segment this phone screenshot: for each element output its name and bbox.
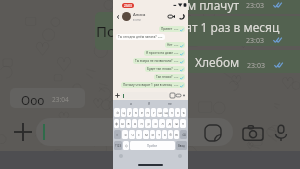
staticText: 23:0	[158, 36, 163, 39]
staticText: ь	[164, 132, 166, 137]
staticText: Ты вчера не позвонила?	[135, 59, 173, 63]
staticText: Ввод	[178, 144, 185, 148]
button[interactable]: ь	[162, 130, 167, 139]
button[interactable]: Camera	[176, 93, 181, 98]
staticText: л	[161, 121, 164, 126]
staticText: Пробел	[147, 144, 158, 148]
button[interactable]: Ты вчера не позвонила?	[135, 59, 183, 63]
button[interactable]: ш	[157, 108, 162, 117]
staticText: 23:0	[174, 44, 179, 47]
button[interactable]: ?123	[114, 141, 122, 150]
staticText: 23:03	[247, 61, 265, 71]
button[interactable]: т	[156, 130, 161, 139]
button[interactable]: ⇧	[114, 130, 121, 139]
button[interactable]: р	[145, 119, 151, 128]
button[interactable]: е	[139, 108, 144, 117]
staticText: 23:0	[174, 60, 179, 63]
button[interactable]: Потому что варят 1 раз в месяц	[123, 83, 183, 87]
button[interactable]: Ввод	[176, 141, 187, 150]
button[interactable]: й	[114, 108, 120, 117]
button[interactable]: м	[143, 130, 149, 139]
staticText: ы	[121, 121, 124, 126]
button[interactable]: н	[145, 108, 150, 117]
button[interactable]: Voice message	[271, 123, 290, 142]
staticText: По	[96, 21, 116, 41]
staticText: не	[168, 102, 172, 106]
staticText: 23:0	[174, 28, 179, 31]
staticText: Потому что варят 1 раз в месяц	[123, 83, 173, 87]
button[interactable]: Message	[121, 92, 169, 99]
staticText: э	[182, 121, 184, 126]
button[interactable]: ц	[121, 108, 126, 117]
staticText: Будет так плохо?	[147, 67, 173, 71]
button[interactable]: к	[133, 108, 138, 117]
staticText: я	[130, 102, 132, 106]
staticText: т	[158, 132, 160, 137]
staticText: ю	[175, 132, 178, 137]
button[interactable]: Camera	[242, 123, 264, 145]
staticText: Привет	[161, 27, 173, 31]
button[interactable]: у	[127, 108, 132, 117]
staticText: 23:03	[246, 1, 264, 11]
button[interactable]: Back	[115, 14, 121, 20]
button[interactable]: ☺	[123, 141, 129, 150]
staticText: е	[141, 110, 143, 115]
button[interactable]: ъ	[181, 108, 186, 117]
button[interactable]: л	[159, 119, 165, 128]
button[interactable]: Ты сегодня днём занята?	[118, 35, 163, 39]
button[interactable]: Привет	[161, 27, 183, 31]
button[interactable]: Нет	[167, 43, 183, 47]
staticText: г	[153, 110, 155, 115]
button[interactable]: ф	[114, 119, 119, 128]
staticText: з	[171, 110, 173, 115]
button[interactable]: щ	[163, 108, 168, 117]
staticText: м плачут	[187, 0, 240, 13]
button[interactable]: х	[175, 108, 180, 117]
button[interactable]: Video call	[168, 13, 175, 20]
button[interactable]: а	[132, 119, 137, 128]
staticText: 23:0	[174, 76, 179, 79]
button[interactable]: Sticker	[203, 123, 223, 143]
staticText: Ты сегодня днём занята?	[118, 35, 157, 39]
staticText: Так плохо?	[156, 75, 173, 79]
button[interactable]: и	[150, 130, 155, 139]
staticText: Нет	[167, 43, 173, 47]
staticText: ж	[175, 121, 178, 126]
button[interactable]: с	[136, 130, 142, 139]
button[interactable]: э	[180, 119, 186, 128]
button[interactable]: Sticker	[170, 93, 175, 98]
staticText: й	[116, 110, 119, 115]
button[interactable]: з	[169, 108, 174, 117]
staticText: д	[168, 121, 171, 126]
button[interactable]: ч	[129, 130, 135, 139]
staticText: ц	[122, 110, 125, 115]
staticText: в сети	[133, 18, 141, 22]
button[interactable]: д	[166, 119, 172, 128]
button[interactable]: г	[151, 108, 156, 117]
button[interactable]: Message	[36, 118, 233, 146]
staticText: м	[145, 132, 148, 137]
button[interactable]: п	[138, 119, 144, 128]
staticText: 23:0	[174, 84, 179, 87]
button[interactable]: в	[126, 119, 131, 128]
button[interactable]: я	[122, 130, 128, 139]
button[interactable]: Call	[178, 13, 185, 20]
button[interactable]: Я просто на доме	[146, 51, 183, 55]
button[interactable]: ⌫	[180, 130, 187, 139]
button[interactable]: ж	[173, 119, 179, 128]
staticText: ⌫	[182, 133, 186, 136]
button[interactable]: Attach	[10, 119, 35, 144]
button[interactable]: Так плохо?	[156, 75, 183, 79]
button[interactable]: ю	[174, 130, 179, 139]
staticText: н	[146, 110, 149, 115]
staticText: и	[151, 132, 154, 137]
staticText: Алиса	[133, 12, 146, 18]
button[interactable]: о	[152, 119, 158, 128]
button[interactable]: Space	[130, 141, 175, 150]
button[interactable]: Voice	[182, 94, 186, 98]
button[interactable]: Будет так плохо?	[147, 67, 183, 71]
button[interactable]: ы	[120, 119, 125, 128]
staticText: ⇧	[116, 133, 119, 136]
button[interactable]: б	[168, 130, 173, 139]
staticText: ш	[158, 110, 162, 115]
